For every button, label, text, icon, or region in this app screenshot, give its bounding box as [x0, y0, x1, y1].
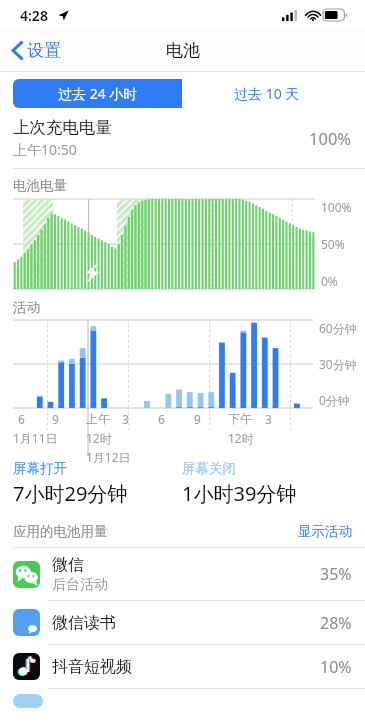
staticText: 0%	[321, 273, 338, 289]
staticText: 0分钟	[319, 392, 350, 408]
staticText: 设置	[27, 40, 61, 61]
staticText: 9	[52, 411, 59, 427]
button[interactable]: 微信	[0, 548, 365, 600]
staticText: 28%	[320, 612, 352, 634]
staticText: 应用的电池用量	[13, 523, 298, 540]
staticText: 12时	[86, 430, 112, 446]
staticText: 屏幕关闭	[182, 460, 236, 477]
staticText: 过去 10 天	[234, 84, 300, 103]
staticText: 3	[122, 411, 129, 427]
staticText: 活动	[13, 299, 40, 316]
staticText: 上午10:50	[13, 140, 77, 159]
staticText: 100%	[309, 127, 352, 149]
staticText: 上次充电电量	[13, 117, 112, 138]
staticText: 9	[194, 411, 201, 427]
staticText: 电池	[166, 40, 200, 61]
staticText: 1月11日	[13, 430, 58, 446]
staticText: 6	[158, 411, 165, 427]
staticText: 7小时29分钟	[13, 480, 128, 507]
staticText: 4:28	[20, 6, 48, 25]
staticText: 微信读书	[52, 613, 116, 633]
button[interactable]: 过去 24 小时	[13, 79, 182, 108]
staticText: 1月12日	[86, 449, 131, 465]
staticText: 屏幕打开	[13, 460, 67, 477]
staticText: 35%	[320, 563, 352, 585]
staticText: 电池电量	[13, 177, 67, 194]
staticText: 30分钟	[319, 356, 357, 372]
button[interactable]: 微信读书	[0, 601, 365, 644]
staticText: 显示活动	[298, 523, 352, 540]
staticText: 下午	[228, 411, 252, 426]
staticText: 6	[18, 411, 25, 427]
staticText: 60分钟	[319, 320, 357, 336]
button[interactable]: 设置	[8, 36, 65, 65]
staticText: 3	[265, 411, 272, 427]
staticText: 1小时39分钟	[182, 480, 297, 507]
staticText: 10%	[320, 656, 352, 678]
button[interactable]: 显示活动	[298, 523, 352, 540]
button[interactable]: 抖音短视频	[0, 645, 365, 688]
staticText: 100%	[321, 199, 352, 215]
staticText: 后台活动	[52, 576, 108, 594]
staticText: 12时	[228, 430, 254, 446]
staticText: 过去 24 小时	[58, 84, 138, 103]
staticText: 50%	[321, 236, 345, 252]
button[interactable]: 过去 10 天	[182, 79, 352, 108]
staticText: 微信	[52, 555, 84, 575]
button[interactable]: 上次充电电量	[0, 108, 365, 168]
staticText: 上午	[86, 411, 110, 426]
staticText: 抖音短视频	[52, 657, 132, 677]
